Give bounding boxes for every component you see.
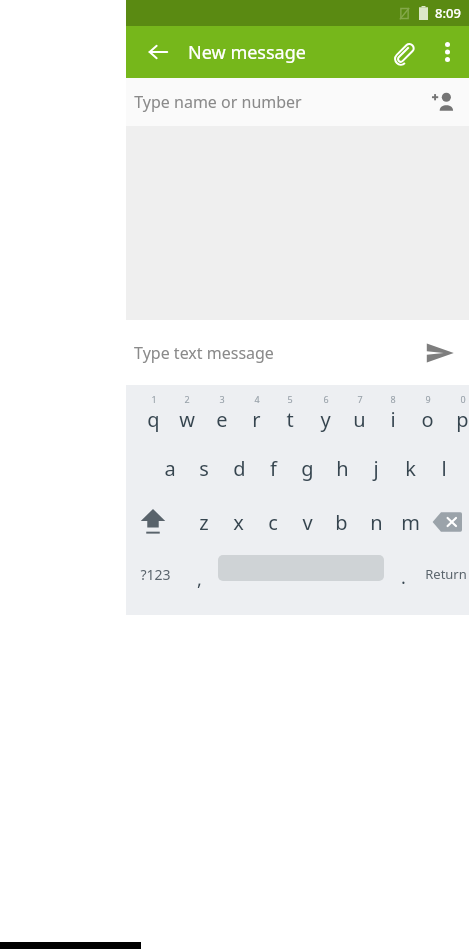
staticText: c [268, 509, 278, 536]
staticText: n [370, 509, 383, 536]
staticText: x [233, 509, 244, 536]
button[interactable]: l [427, 441, 461, 495]
button[interactable]: 1 [136, 385, 170, 441]
button[interactable]: v [290, 495, 324, 549]
button[interactable]: ?123 [132, 549, 178, 599]
button[interactable]: 0 [445, 385, 469, 441]
staticText: 5 [287, 393, 293, 405]
staticText: z [199, 509, 209, 536]
staticText: w [179, 406, 195, 433]
button[interactable]: 9 [410, 385, 444, 441]
button[interactable]: Attach [381, 30, 425, 74]
staticText: l [441, 455, 447, 482]
staticText: q [147, 406, 160, 433]
button[interactable]: f [256, 441, 290, 495]
staticText: e [216, 406, 228, 433]
staticText: 9 [425, 393, 431, 405]
button[interactable]: Back [138, 32, 178, 72]
button[interactable]: Return [422, 549, 469, 599]
button[interactable]: 3 [205, 385, 239, 441]
staticText: 6 [323, 393, 329, 405]
staticText: New message [188, 40, 306, 65]
button[interactable]: 6 [308, 385, 342, 441]
staticText: g [301, 455, 314, 482]
staticText: 8 [390, 393, 396, 405]
button[interactable]: a [153, 441, 187, 495]
button[interactable]: Shift [132, 495, 174, 549]
staticText: y [320, 406, 331, 433]
staticText: 7 [357, 393, 363, 405]
staticText: f [270, 455, 277, 482]
button[interactable]: k [393, 441, 427, 495]
staticText: ?123 [140, 565, 171, 584]
button[interactable]: More options [425, 30, 469, 74]
staticText: 1 [151, 393, 157, 405]
staticText: 3 [219, 393, 225, 405]
button[interactable]: b [324, 495, 358, 549]
button[interactable]: Type name or number [126, 78, 469, 126]
staticText: Return [425, 565, 467, 583]
button[interactable]: z [187, 495, 221, 549]
staticText: Type text message [134, 342, 274, 364]
staticText: 2 [184, 393, 190, 405]
staticText: 0 [460, 393, 466, 405]
button[interactable]: . [388, 549, 418, 599]
button[interactable]: , [184, 549, 214, 599]
button[interactable]: s [187, 441, 221, 495]
button[interactable]: 7 [342, 385, 376, 441]
button[interactable]: j [359, 441, 393, 495]
button[interactable]: g [290, 441, 324, 495]
button[interactable]: d [222, 441, 256, 495]
staticText: h [336, 455, 349, 482]
staticText: b [335, 509, 348, 536]
button[interactable]: h [325, 441, 359, 495]
staticText: , [197, 567, 202, 592]
staticText: Type name or number [134, 91, 302, 113]
staticText: o [421, 406, 434, 433]
staticText: a [164, 455, 176, 482]
staticText: s [199, 455, 209, 482]
button[interactable]: Backspace [426, 495, 468, 549]
button[interactable]: m [393, 495, 427, 549]
button[interactable]: x [221, 495, 255, 549]
staticText: 8:09 [435, 4, 461, 22]
button[interactable]: Add recipient [423, 82, 463, 122]
staticText: i [390, 406, 396, 433]
staticText: m [401, 509, 420, 536]
button[interactable]: Send [417, 330, 463, 376]
staticText: t [286, 406, 294, 433]
button[interactable]: 4 [239, 385, 273, 441]
button[interactable]: 8 [376, 385, 410, 441]
staticText: 4 [254, 393, 260, 405]
staticText: p [456, 406, 469, 433]
staticText: d [233, 455, 246, 482]
button[interactable]: 5 [273, 385, 307, 441]
button[interactable]: n [359, 495, 393, 549]
staticText: . [401, 565, 406, 590]
staticText: k [405, 455, 416, 482]
staticText: u [353, 406, 366, 433]
staticText: j [373, 455, 379, 482]
button[interactable]: 2 [170, 385, 204, 441]
staticText: v [302, 509, 313, 536]
button[interactable]: c [256, 495, 290, 549]
staticText: r [252, 406, 261, 433]
button[interactable]: Type text message [126, 320, 469, 385]
